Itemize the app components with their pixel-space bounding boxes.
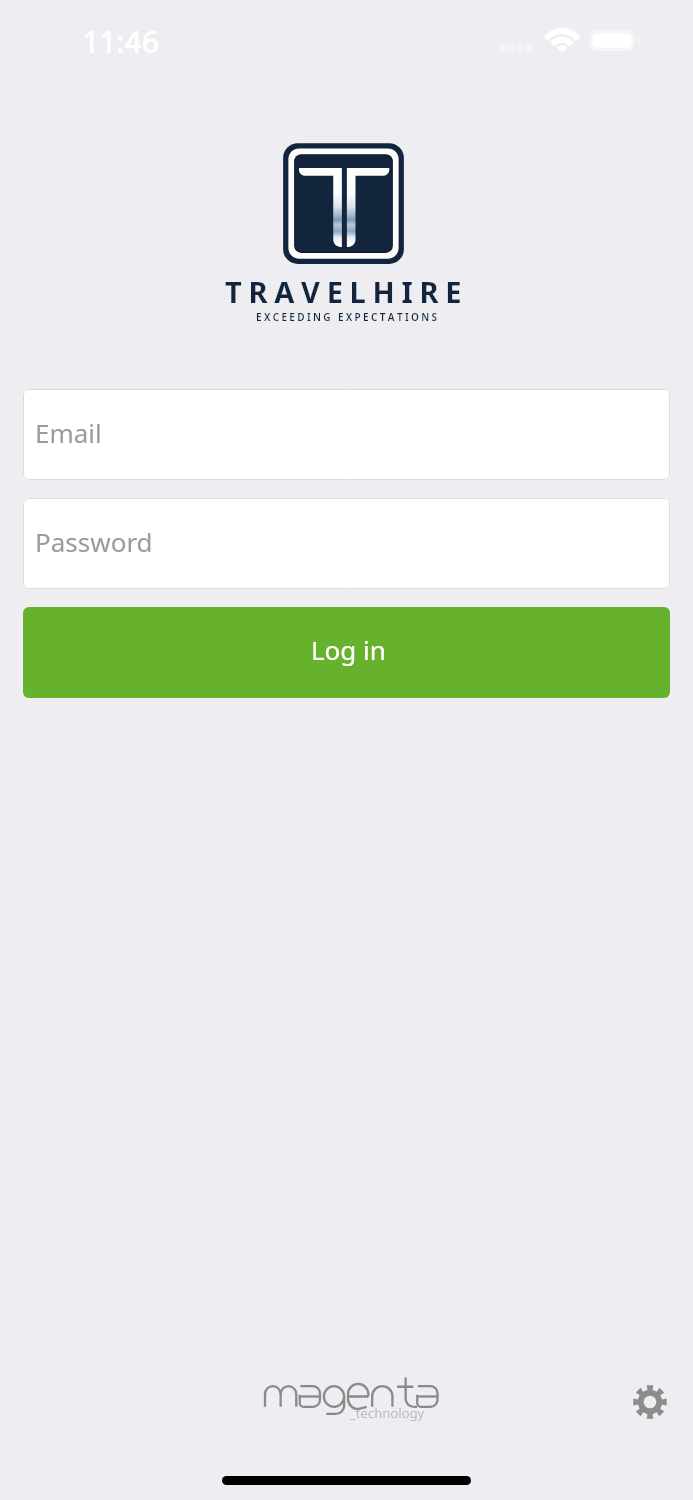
staticText: T R A V E L H I R E xyxy=(225,272,462,311)
staticText: _technology xyxy=(350,1404,425,1422)
staticText: Password xyxy=(35,524,153,559)
button[interactable]: Log in xyxy=(23,607,670,698)
button[interactable]: Password xyxy=(23,498,670,589)
staticText: 11:46 xyxy=(82,21,159,62)
button[interactable]: Settings xyxy=(627,1379,673,1425)
staticText: E X C E E D I N G E X P E C T A T I O N … xyxy=(256,310,437,324)
button[interactable]: Email xyxy=(23,389,670,480)
staticText: Email xyxy=(35,415,102,450)
staticText: Log in xyxy=(311,632,386,667)
